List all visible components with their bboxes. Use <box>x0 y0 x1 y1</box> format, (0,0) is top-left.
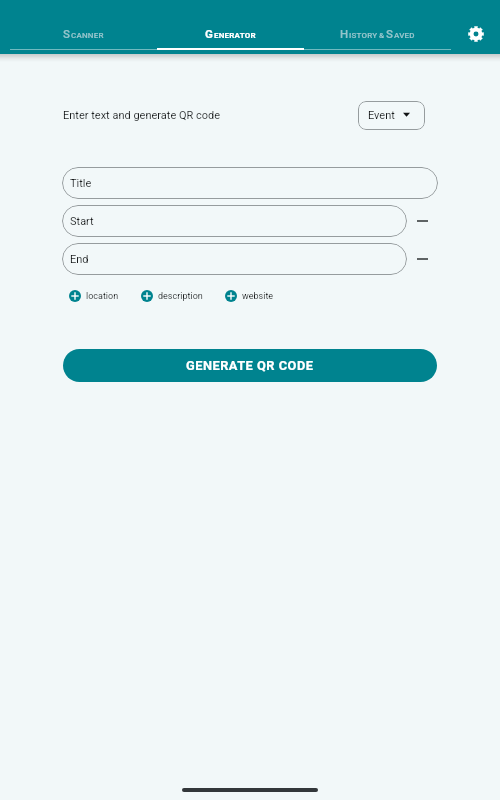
staticText: G <box>205 27 214 40</box>
staticText: End <box>70 253 89 266</box>
button[interactable]: Start <box>62 205 407 237</box>
staticText: Event <box>368 109 395 122</box>
staticText: AVED <box>394 31 415 40</box>
staticText: S <box>63 27 71 40</box>
button[interactable]: G <box>157 0 304 54</box>
staticText: ISTORY <box>349 31 378 40</box>
staticText: location <box>86 291 119 302</box>
button[interactable]: Remove start <box>407 206 438 237</box>
button[interactable]: Title <box>62 167 438 199</box>
staticText: & <box>379 31 385 40</box>
staticText: Enter text and generate QR code <box>63 109 221 122</box>
staticText: description <box>158 291 203 302</box>
button[interactable]: End <box>62 243 407 275</box>
staticText: Start <box>70 215 94 228</box>
staticText: S <box>386 27 394 40</box>
staticText: CANNER <box>71 31 104 40</box>
staticText: H <box>340 27 349 40</box>
button[interactable]: Settings <box>451 0 500 54</box>
staticText: GENERATE QR CODE <box>186 358 314 373</box>
button[interactable]: location <box>69 290 119 302</box>
button[interactable]: H <box>304 0 451 54</box>
staticText: website <box>242 291 274 302</box>
staticText: Title <box>70 177 92 190</box>
button[interactable]: website <box>225 290 274 302</box>
button[interactable]: Remove end <box>407 244 438 275</box>
button[interactable]: Event <box>358 101 425 130</box>
button[interactable]: description <box>141 290 203 302</box>
button[interactable]: S <box>10 0 157 54</box>
staticText: ENERATOR <box>214 31 256 40</box>
button[interactable]: GENERATE QR CODE <box>63 349 437 382</box>
